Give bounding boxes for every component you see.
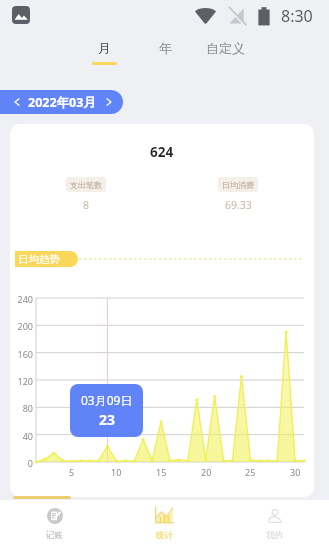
other: Previous month — [12, 97, 22, 107]
staticText: 记账 — [46, 530, 63, 541]
button[interactable]: 统计 — [109, 500, 219, 549]
button[interactable]: 自定义 — [203, 40, 247, 65]
button[interactable]: 日均消费 — [162, 177, 314, 212]
staticText: 日均趋势 — [18, 253, 60, 266]
staticText: 年 — [159, 40, 172, 56]
button[interactable]: 我的 — [219, 500, 329, 549]
button[interactable]: 年 — [143, 40, 187, 65]
staticText: 15 — [156, 466, 167, 478]
button[interactable]: 支出笔数 — [10, 177, 162, 212]
other: Image placeholder — [12, 6, 30, 24]
staticText: 我的 — [266, 530, 283, 541]
staticText: 40 — [22, 430, 33, 442]
staticText: 160 — [17, 348, 33, 360]
staticText: 20 — [201, 466, 212, 478]
staticText: 03月09日 — [81, 392, 133, 408]
staticText: 自定义 — [206, 40, 245, 56]
staticText: 2022年03月 — [28, 94, 96, 111]
staticText: 8:30 — [281, 5, 313, 27]
staticText: 25 — [245, 466, 256, 478]
staticText: 240 — [17, 293, 33, 305]
staticText: 30 — [290, 466, 301, 478]
staticText: 10 — [111, 466, 122, 478]
button[interactable]: 月 — [82, 40, 126, 65]
button[interactable]: 日均趋势 — [15, 251, 78, 267]
button[interactable]: 记账 — [0, 500, 109, 549]
staticText: 月 — [98, 40, 111, 56]
staticText: 80 — [22, 402, 33, 414]
staticText: 0 — [27, 457, 33, 469]
staticText: 200 — [17, 320, 33, 332]
staticText: 日均消费 — [222, 180, 254, 190]
other: Next month — [104, 97, 114, 107]
staticText: 23 — [99, 410, 116, 429]
staticText: 5 — [69, 466, 75, 478]
staticText: 统计 — [156, 530, 173, 541]
staticText: 120 — [17, 375, 33, 387]
staticText: 69.33 — [225, 198, 252, 212]
button[interactable]: Previous month — [0, 90, 123, 114]
staticText: 8 — [83, 198, 90, 212]
staticText: 支出笔数 — [70, 180, 102, 190]
staticText: 624 — [150, 143, 174, 161]
